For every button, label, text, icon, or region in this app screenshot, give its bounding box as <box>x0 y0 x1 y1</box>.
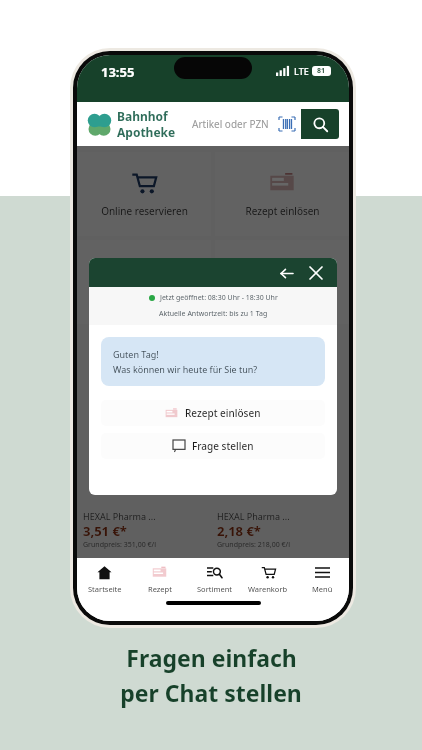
staticText: HEXAL Pharma ... <box>83 510 156 522</box>
button[interactable]: Artikel oder PZN <box>184 109 301 139</box>
button[interactable]: Schließen <box>305 262 327 284</box>
button[interactable] <box>215 240 349 324</box>
staticText: Guten Tag! <box>113 348 159 360</box>
staticText: Rezept einlösen <box>185 406 261 420</box>
button[interactable]: Rezept einlösen <box>101 400 325 426</box>
staticText: Fragen einfach <box>126 642 297 673</box>
staticText: per Chat stellen <box>120 677 302 708</box>
button[interactable]: Sortiment <box>187 558 241 601</box>
staticText: Jetzt geöffnet: 08:30 Uhr - 18:30 Uhr <box>160 293 278 303</box>
button[interactable]: Menü <box>295 558 349 601</box>
button[interactable] <box>77 240 211 324</box>
staticText: Was können wir heute für Sie tun? <box>113 363 258 375</box>
button[interactable]: Startseite <box>77 558 132 601</box>
button[interactable]: Online reservieren <box>77 152 211 236</box>
staticText: 81 <box>317 66 326 76</box>
staticText: Artikel oder PZN <box>192 117 279 131</box>
staticText: Grundpreis: 218,00 €/l <box>217 540 290 550</box>
staticText: LTE <box>294 65 309 77</box>
staticText: Menü <box>312 584 333 594</box>
button[interactable]: Rezept einlösen <box>215 152 349 236</box>
staticText: HEXAL Pharma ... <box>217 510 290 522</box>
button[interactable]: Warenkorb <box>241 558 295 601</box>
button[interactable]: Frage stellen <box>101 433 325 459</box>
other: Barcode scannen <box>279 117 295 131</box>
staticText: Frage stellen <box>192 439 254 453</box>
staticText: Online reservieren <box>101 204 188 218</box>
staticText: Rezept einlösen <box>245 204 320 218</box>
staticText: Rezept <box>148 584 172 594</box>
staticText: Grundpreis: 351,00 €/l <box>83 540 156 550</box>
staticText: Warenkorb <box>248 584 288 594</box>
staticText: Bahnhof <box>117 108 168 124</box>
button[interactable]: Zurück <box>275 262 297 284</box>
staticText: Sortiment <box>197 584 232 594</box>
staticText: 13:55 <box>101 63 135 81</box>
staticText: Apotheke <box>117 124 176 140</box>
staticText: 3,51 €* <box>83 522 127 540</box>
button[interactable]: Suchen <box>301 109 339 139</box>
staticText: Startseite <box>88 584 122 594</box>
button[interactable]: Rezept <box>132 558 187 601</box>
staticText: Aktuelle Antwortzeit: bis zu 1 Tag <box>159 309 268 319</box>
staticText: 2,18 €* <box>217 522 261 540</box>
